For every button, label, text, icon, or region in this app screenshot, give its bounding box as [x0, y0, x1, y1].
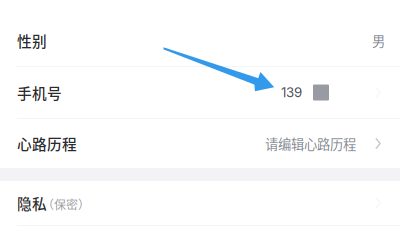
staticText: 心路历程	[17, 133, 77, 154]
button[interactable]: 性别	[0, 15, 400, 66]
button[interactable]: 心路历程	[0, 119, 400, 168]
button[interactable]: 手机号	[0, 67, 400, 118]
staticText: （保密）	[42, 195, 90, 213]
staticText: 男	[372, 31, 385, 50]
staticText: 性别	[17, 30, 47, 51]
staticText: 隐私	[17, 192, 47, 214]
staticText: 139	[281, 84, 302, 100]
button[interactable]: 隐私	[0, 181, 400, 225]
staticText: 手机号	[17, 82, 62, 103]
staticText: 请编辑心路历程	[265, 134, 356, 153]
